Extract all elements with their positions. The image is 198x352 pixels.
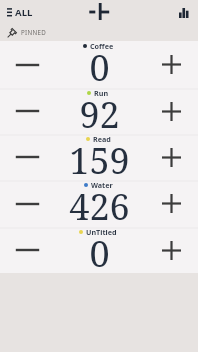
staticText: Run [94, 88, 109, 98]
staticText: UnTitled [86, 227, 117, 237]
staticText: 0 [89, 229, 110, 275]
staticText: PINNED [21, 28, 47, 36]
button[interactable]: Statistics [172, 2, 196, 24]
button[interactable]: Decrement UnTitled [0, 227, 54, 273]
staticText: 426 [69, 182, 130, 229]
staticText: Water [91, 180, 113, 190]
button[interactable]: Increment Water [144, 180, 198, 227]
button[interactable]: Increment UnTitled [144, 227, 198, 273]
button[interactable]: Increment Read [144, 134, 198, 180]
button[interactable]: Run [54, 88, 144, 134]
button[interactable]: Increment Coffee [144, 41, 198, 88]
staticText: Read [93, 134, 111, 144]
staticText: 159 [69, 136, 130, 182]
button[interactable]: Add or subtract [85, 0, 115, 22]
staticText: ALL [15, 6, 33, 19]
button[interactable]: Decrement Water [0, 180, 54, 227]
button[interactable]: Decrement Read [0, 134, 54, 180]
button[interactable]: ALL [0, 0, 37, 22]
button[interactable]: Decrement Coffee [0, 41, 54, 88]
button[interactable]: Increment Run [144, 88, 198, 134]
button[interactable]: Decrement Run [0, 88, 54, 134]
button[interactable]: Water [54, 180, 144, 227]
button[interactable]: UnTitled [54, 227, 144, 273]
button[interactable]: Read [54, 134, 144, 180]
staticText: 0 [89, 43, 110, 90]
staticText: 92 [79, 90, 120, 136]
staticText: Coffee [90, 41, 114, 51]
button[interactable]: Coffee [54, 41, 144, 88]
